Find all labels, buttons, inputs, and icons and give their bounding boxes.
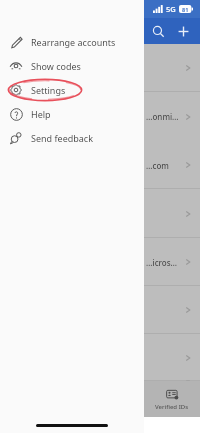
button[interactable]: Send feedback <box>0 126 144 150</box>
staticText: Show codes <box>31 60 81 72</box>
button[interactable] <box>0 286 200 334</box>
button[interactable]: …icros… <box>0 238 200 286</box>
button[interactable]: Add account <box>170 18 196 44</box>
button[interactable]: Show codes <box>0 54 144 78</box>
button[interactable] <box>0 334 200 381</box>
button[interactable]: Search <box>146 19 170 43</box>
staticText: Rearrange accounts <box>31 36 116 48</box>
staticText: Help <box>31 108 51 120</box>
button[interactable] <box>0 44 200 92</box>
staticText: Settings <box>31 84 66 96</box>
staticText: …onmi… <box>146 111 180 122</box>
button[interactable]: …com <box>0 141 200 189</box>
staticText: Send feedback <box>31 132 93 144</box>
staticText: …icros… <box>146 257 180 268</box>
staticText: 5G <box>166 4 176 14</box>
staticText: …com <box>146 160 180 171</box>
button[interactable] <box>0 189 200 238</box>
button[interactable]: Verified IDs <box>144 381 200 417</box>
staticText: 81 <box>182 6 189 13</box>
button[interactable]: Rearrange accounts <box>0 30 144 54</box>
staticText: Verified IDs <box>155 403 189 411</box>
button[interactable]: Help <box>0 102 144 126</box>
button[interactable]: Settings <box>0 78 144 102</box>
button[interactable]: …onmi… <box>0 92 200 141</box>
